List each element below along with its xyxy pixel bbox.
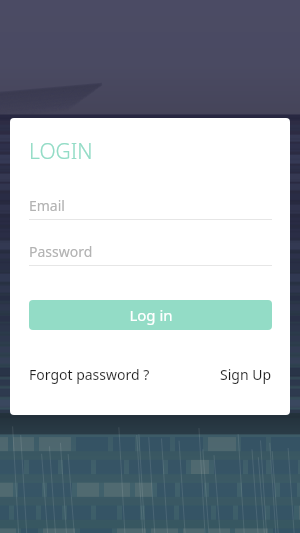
staticText: Log in <box>129 305 173 325</box>
button[interactable]: Password <box>29 238 272 266</box>
button[interactable]: Email <box>29 192 272 220</box>
button[interactable]: Forgot password ? <box>29 365 150 384</box>
staticText: LOGIN <box>29 137 93 166</box>
button[interactable]: Sign Up <box>220 365 272 384</box>
staticText: Sign Up <box>220 365 272 384</box>
button[interactable]: Log in <box>29 300 272 330</box>
staticText: Password <box>29 242 93 261</box>
staticText: Email <box>29 196 65 215</box>
staticText: Forgot password ? <box>29 365 150 384</box>
